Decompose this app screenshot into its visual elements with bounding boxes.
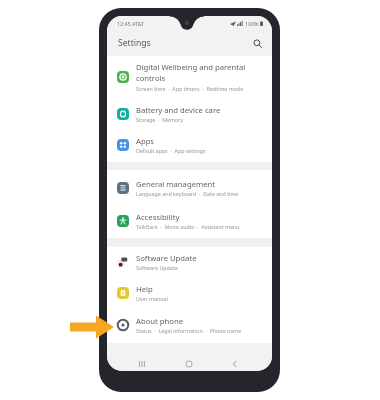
button[interactable]: Search xyxy=(250,36,264,50)
button[interactable]: Help xyxy=(107,277,272,309)
staticText: User manual xyxy=(136,295,168,302)
staticText: Default apps · App settings xyxy=(136,147,206,154)
staticText: Screen time · App timers · Bedtime mode xyxy=(136,85,244,92)
button[interactable]: Accessibility xyxy=(107,204,272,237)
staticText: Storage · Memory xyxy=(136,116,184,123)
button[interactable]: About phone xyxy=(107,309,272,341)
button[interactable]: General management xyxy=(107,171,272,204)
staticText: Battery and device care xyxy=(136,105,221,115)
staticText: Language and keyboard · Date and time xyxy=(136,190,239,197)
staticText: Settings xyxy=(118,37,151,49)
button[interactable]: Back xyxy=(224,353,246,371)
staticText: Accessibility xyxy=(136,212,180,222)
staticText: TalkBack · Mono audio · Assistant menu xyxy=(136,223,240,230)
button[interactable]: Recents xyxy=(131,353,153,371)
button[interactable]: Digital Wellbeing and parental controls xyxy=(107,57,272,96)
staticText: Software Update xyxy=(136,264,178,271)
staticText: Digital Wellbeing and parental controls xyxy=(136,62,263,84)
button[interactable]: Home xyxy=(178,353,200,371)
staticText: Help xyxy=(136,284,153,294)
staticText: About phone xyxy=(136,316,184,326)
staticText: Software Update xyxy=(136,253,197,263)
button[interactable]: Apps xyxy=(107,129,272,161)
staticText: 12:45 AT&T xyxy=(117,20,145,27)
staticText: General management xyxy=(136,179,216,189)
staticText: Status · Legal information · Phone name xyxy=(136,327,242,334)
staticText: Apps xyxy=(136,136,155,146)
staticText: 100% xyxy=(245,20,259,27)
button[interactable]: Battery and device care xyxy=(107,97,272,130)
button[interactable]: Software Update xyxy=(107,245,272,278)
